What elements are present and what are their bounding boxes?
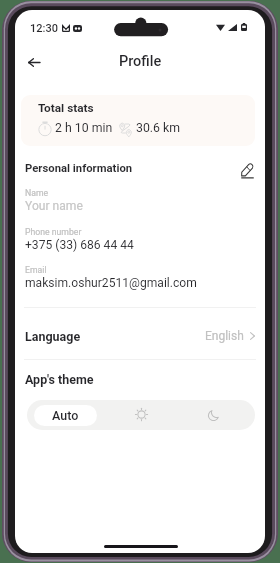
staticText: 2 h 10 min <box>55 121 113 135</box>
staticText: Phone number <box>25 227 82 237</box>
staticText: Language <box>25 329 81 344</box>
staticText: Name <box>25 188 49 198</box>
staticText: 30.6 km <box>136 121 181 135</box>
staticText: maksim.oshur2511@gmail.com <box>25 276 197 290</box>
staticText: Total stats <box>38 101 94 115</box>
staticText: Auto <box>52 408 79 423</box>
staticText: 12:30 <box>30 22 58 35</box>
button[interactable]: Edit <box>236 159 258 181</box>
button[interactable]: Language <box>15 320 265 352</box>
button[interactable]: Total stats <box>21 95 255 146</box>
button[interactable]: Light theme <box>103 400 179 430</box>
staticText: App's theme <box>25 372 94 387</box>
button[interactable]: Dark theme <box>179 400 255 430</box>
staticText: Profile <box>119 53 162 70</box>
staticText: Personal information <box>25 162 133 175</box>
staticText: Your name <box>25 199 83 213</box>
button[interactable]: Back <box>22 50 46 74</box>
staticText: English <box>205 329 244 343</box>
staticText: Email <box>25 265 47 275</box>
button[interactable]: Auto <box>27 400 103 430</box>
staticText: +375 (33) 686 44 44 <box>25 238 134 252</box>
